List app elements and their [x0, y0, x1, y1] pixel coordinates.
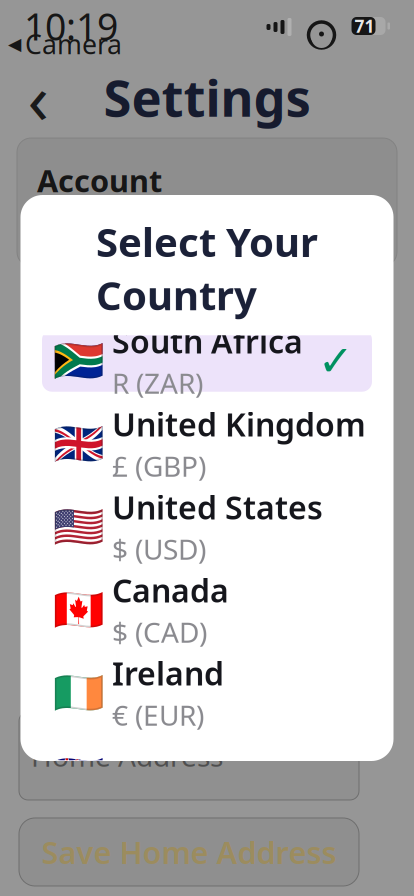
- staticText: Australia: [112, 754, 252, 797]
- staticText: Select Your Country: [96, 215, 318, 321]
- button[interactable]: 🇿🇦: [20, 319, 393, 402]
- button[interactable]: 🇨🇦: [20, 568, 393, 651]
- staticText: 71: [354, 14, 374, 37]
- staticText: 🇬🇧: [52, 420, 103, 467]
- button[interactable]: Save Home Address: [19, 818, 359, 886]
- staticText: $ (CAD): [112, 613, 207, 651]
- staticText: Camera: [25, 26, 122, 62]
- staticText: United Kingdom: [112, 403, 366, 445]
- staticText: R (ZAR): [112, 364, 203, 402]
- staticText: 🇺🇸: [52, 503, 103, 550]
- staticText: South Africa: [112, 320, 303, 362]
- staticText: 🇮🇪: [52, 669, 103, 716]
- button[interactable]: 🇬🇧: [20, 402, 393, 485]
- staticText: € (EUR): [112, 696, 204, 734]
- staticText: Cancel: [151, 763, 262, 811]
- staticText: Location Settings: [19, 595, 333, 643]
- staticText: Save Home Address: [41, 832, 336, 872]
- staticText: Home Address: [31, 737, 223, 775]
- staticText: Account: [37, 160, 162, 201]
- staticText: £ (GBP): [112, 447, 206, 485]
- staticText: Settings: [103, 63, 310, 131]
- staticText: ‹: [27, 51, 48, 143]
- staticText: Ireland: [112, 652, 224, 694]
- staticText: Canada: [112, 569, 229, 611]
- button[interactable]: Cancel: [87, 764, 327, 810]
- staticText: $ (USD): [112, 530, 206, 568]
- staticText: Home Address: [19, 661, 211, 698]
- button[interactable]: 🇮🇪: [20, 651, 393, 734]
- button[interactable]: 🇦🇺: [20, 734, 393, 817]
- staticText: 10:19: [24, 1, 118, 51]
- staticText: United States: [112, 486, 323, 528]
- button[interactable]: 🇺🇸: [20, 485, 393, 568]
- staticText: ◀: [8, 34, 21, 54]
- button[interactable]: Back: [12, 71, 64, 123]
- staticText: 🇦🇺: [52, 752, 103, 799]
- staticText: 🇨🇦: [52, 586, 103, 633]
- staticText: ✓: [318, 336, 354, 385]
- staticText: 🇿🇦: [52, 337, 103, 384]
